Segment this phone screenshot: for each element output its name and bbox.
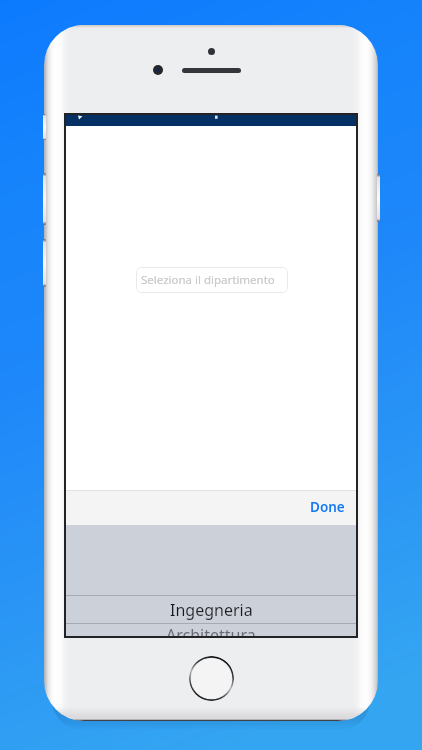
staticText: Ingegneria	[170, 599, 253, 621]
button[interactable]: Seleziona il dipartimento	[136, 267, 288, 293]
staticText: Architettura	[166, 624, 256, 636]
staticText: Seleziona il dipartimento	[141, 272, 275, 288]
staticText: Done	[310, 498, 345, 516]
button[interactable]: Done	[310, 498, 345, 516]
button[interactable]: Home	[189, 656, 234, 701]
